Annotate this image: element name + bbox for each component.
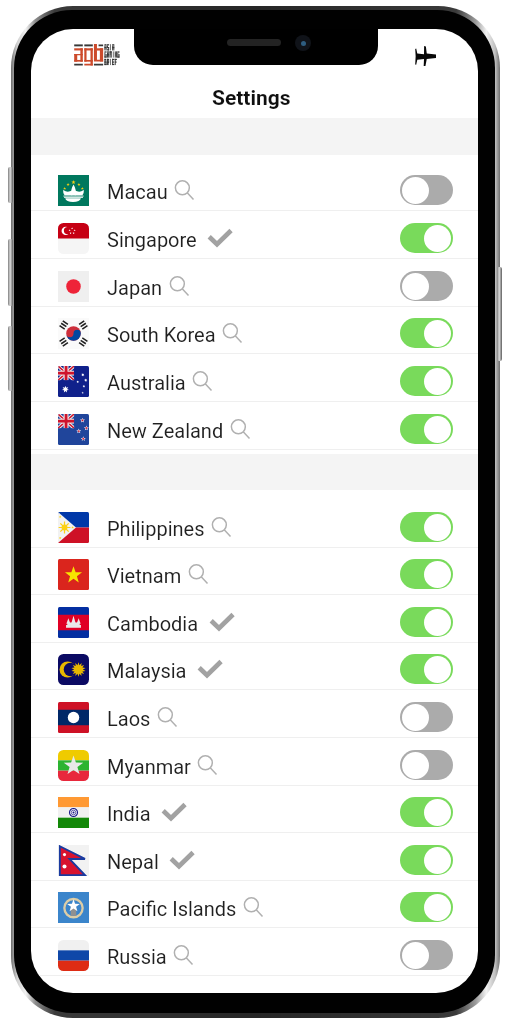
button[interactable]: Russia <box>31 930 478 978</box>
button[interactable]: On <box>400 223 453 253</box>
button[interactable]: On <box>400 366 453 396</box>
button[interactable]: Asia Gaming Brief <box>74 44 119 66</box>
button[interactable]: Off <box>400 271 453 301</box>
button[interactable]: South Korea <box>31 308 478 356</box>
button[interactable]: Airplane mode <box>414 46 436 66</box>
button[interactable]: Australia <box>31 356 478 404</box>
staticText: South Korea <box>107 323 216 346</box>
staticText: Australia <box>107 371 186 394</box>
button[interactable]: Off <box>400 175 453 205</box>
button[interactable]: Nepal <box>31 835 478 883</box>
button[interactable]: Singapore <box>31 213 478 261</box>
button[interactable]: Off <box>400 750 453 780</box>
button[interactable]: Off <box>400 940 453 970</box>
button[interactable]: India <box>31 787 478 835</box>
button[interactable]: Vietnam <box>31 549 478 597</box>
button[interactable]: Macau <box>31 165 478 213</box>
staticText: Settings <box>212 86 291 111</box>
button[interactable]: On <box>400 318 453 348</box>
button[interactable]: Myanmar <box>31 740 478 788</box>
button[interactable]: New Zealand <box>31 404 478 452</box>
staticText: Singapore <box>107 228 197 251</box>
staticText: Japan <box>107 276 163 299</box>
button[interactable]: On <box>400 797 453 827</box>
staticText: Nepal <box>107 850 159 873</box>
button[interactable]: Laos <box>31 692 478 740</box>
button[interactable]: Malaysia <box>31 644 478 692</box>
button[interactable]: Cambodia <box>31 597 478 645</box>
button[interactable]: On <box>400 512 453 542</box>
staticText: Myanmar <box>107 755 191 778</box>
staticText: India <box>107 802 151 825</box>
button[interactable]: On <box>400 414 453 444</box>
staticText: Russia <box>107 945 167 968</box>
button[interactable]: Pacific Islands <box>31 882 478 930</box>
button[interactable]: On <box>400 654 453 684</box>
button[interactable]: On <box>400 559 453 589</box>
button[interactable]: Philippines <box>31 502 478 550</box>
staticText: Macau <box>107 180 168 203</box>
button[interactable]: On <box>400 892 453 922</box>
staticText: Vietnam <box>107 564 182 587</box>
staticText: Pacific Islands <box>107 897 237 920</box>
button[interactable]: On <box>400 845 453 875</box>
staticText: New Zealand <box>107 419 224 442</box>
staticText: Cambodia <box>107 612 199 635</box>
staticText: Laos <box>107 707 151 730</box>
button[interactable]: Off <box>400 702 453 732</box>
staticText: Philippines <box>107 517 205 540</box>
button[interactable]: Japan <box>31 261 478 309</box>
button[interactable]: On <box>400 607 453 637</box>
staticText: Malaysia <box>107 659 187 682</box>
